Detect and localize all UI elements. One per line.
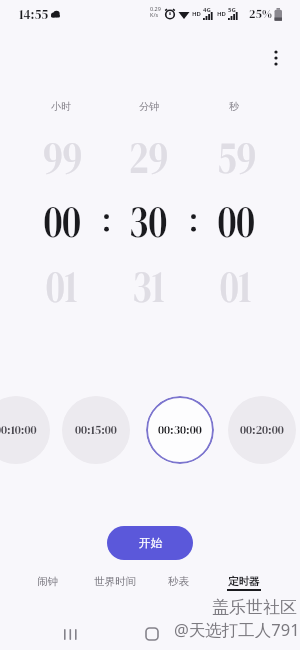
staticText: 01 — [220, 254, 252, 317]
button[interactable]: 00:30:00 — [146, 396, 214, 464]
staticText: 盖乐世社区 — [212, 597, 297, 617]
staticText: 00 — [44, 189, 81, 252]
staticText: 00:15:00 — [75, 422, 117, 438]
staticText: 定时器 — [228, 575, 260, 588]
button[interactable]: 00:15:00 — [62, 396, 130, 464]
staticText: 30 — [129, 189, 167, 252]
staticText: 4G — [203, 6, 211, 14]
staticText: 14:55 — [19, 6, 49, 24]
button[interactable]: 定时器 — [164, 541, 300, 621]
staticText: 闹钟 — [37, 575, 58, 588]
staticText: 29 — [129, 125, 168, 188]
staticText: 00 — [218, 189, 255, 252]
staticText: 00:30:00 — [158, 422, 202, 438]
staticText: 25% — [249, 6, 273, 22]
staticText: 00:10:00 — [0, 422, 37, 438]
staticText: HD — [217, 10, 226, 18]
button[interactable] — [262, 42, 290, 72]
button[interactable] — [132, 620, 172, 648]
staticText: 00:20:00 — [240, 422, 284, 438]
staticText: 01 — [46, 254, 78, 317]
button[interactable]: 秒表 — [98, 541, 258, 621]
staticText: 0.29 K/s — [150, 5, 161, 19]
button[interactable]: 00:10:00 — [0, 396, 50, 464]
staticText: 分钟 — [139, 100, 159, 113]
button[interactable]: 开始 — [107, 526, 193, 560]
staticText: 31 — [132, 254, 165, 317]
button[interactable]: 00:20:00 — [228, 396, 296, 464]
staticText: 59 — [217, 125, 256, 188]
staticText: 世界时间 — [94, 575, 136, 588]
staticText: 秒表 — [168, 575, 189, 588]
staticText: HD — [192, 10, 201, 18]
button[interactable]: 闹钟 — [0, 541, 127, 621]
button[interactable] — [214, 620, 254, 648]
staticText: 99 — [43, 125, 82, 188]
staticText: 小时 — [51, 100, 71, 113]
staticText: 5G — [228, 6, 236, 14]
staticText: 秒 — [229, 100, 239, 113]
staticText: 开始 — [139, 536, 162, 550]
staticText: @天选打工人791 — [174, 618, 300, 638]
button[interactable]: 世界时间 — [35, 541, 195, 621]
button[interactable] — [50, 620, 90, 648]
